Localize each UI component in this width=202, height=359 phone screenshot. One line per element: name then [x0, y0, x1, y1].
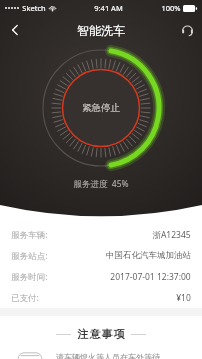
staticText: 服务进度 45% [73, 178, 129, 190]
staticText: 浙A12345 [152, 229, 191, 241]
staticText: Sketch [22, 3, 46, 13]
staticText: ¥10 [176, 292, 191, 304]
button[interactable]: 紧急停止 [69, 76, 133, 140]
staticText: 注意事项 [77, 327, 125, 341]
staticText: 服务时间: [11, 271, 48, 283]
staticText: 中国石化汽车城加油站 [106, 250, 191, 261]
button[interactable]: Customer service [172, 16, 202, 44]
staticText: 智能洗车 [77, 23, 125, 38]
staticText: 服务站点: [11, 250, 48, 262]
staticText: 9:41 AM [94, 3, 123, 13]
staticText: 2017-07-01 12:37:00 [110, 271, 191, 283]
staticText: 已支付: [11, 292, 39, 304]
staticText: 紧急停止 [82, 102, 120, 114]
staticText: 服务车辆: [11, 229, 48, 241]
staticText: 请车辆熄火等人员在车外等待 [56, 352, 160, 359]
staticText: 100% [161, 3, 181, 13]
button[interactable]: Back [0, 16, 30, 44]
